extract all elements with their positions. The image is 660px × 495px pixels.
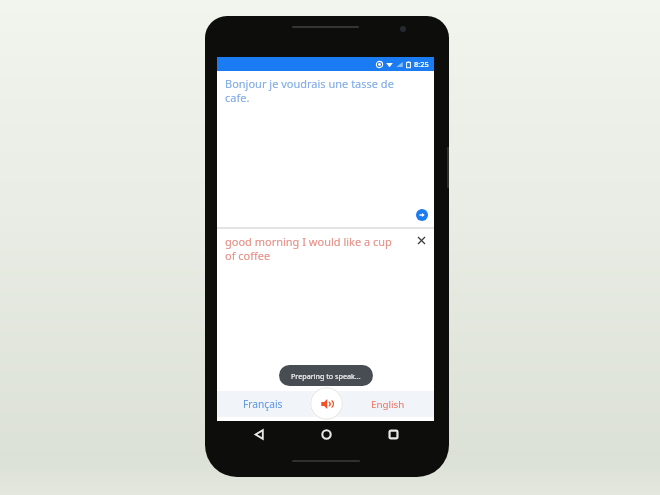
button[interactable]: Speak: [310, 387, 343, 420]
button[interactable]: Français: [217, 391, 308, 417]
button[interactable]: Clear text: [418, 237, 425, 244]
staticText: Preparing to speak...: [291, 371, 361, 381]
button[interactable]: Send translation: [416, 209, 428, 221]
button[interactable]: Recent apps: [382, 423, 404, 445]
staticText: Bonjour je voudrais une tasse de cafe.: [225, 76, 401, 105]
button[interactable]: Home: [315, 423, 337, 445]
staticText: English: [371, 398, 405, 411]
staticText: 8:25: [414, 59, 429, 69]
button[interactable]: Back: [248, 423, 270, 445]
button[interactable]: English: [342, 391, 434, 417]
staticText: Français: [243, 397, 283, 411]
staticText: good morning I would like a cup of coffe…: [225, 234, 397, 263]
